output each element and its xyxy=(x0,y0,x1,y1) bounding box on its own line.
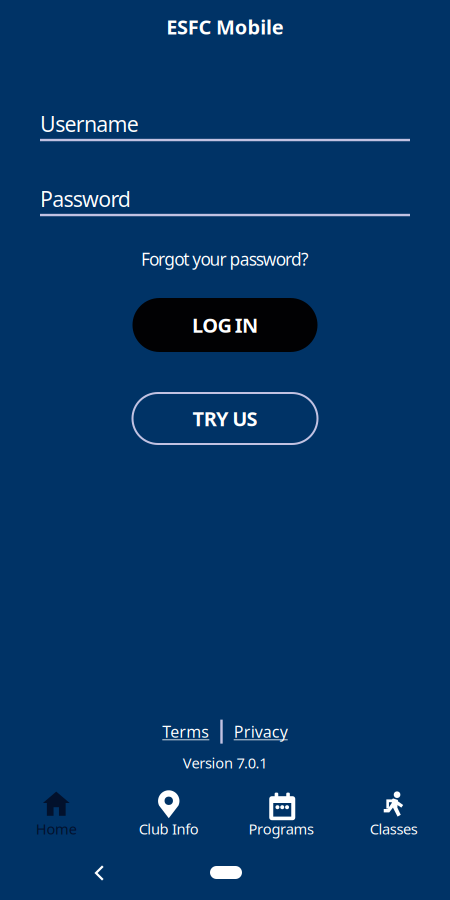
staticText: ESFC Mobile xyxy=(166,13,284,40)
staticText: Classes xyxy=(370,819,418,838)
button[interactable]: Home xyxy=(0,785,112,842)
staticText: Terms xyxy=(162,721,209,742)
button[interactable]: Classes xyxy=(337,785,450,842)
button[interactable]: Privacy xyxy=(228,718,294,745)
staticText: Version 7.0.1 xyxy=(183,753,267,772)
staticText: TRY US xyxy=(192,405,257,432)
button[interactable]: LOG IN xyxy=(132,298,317,352)
button[interactable]: Programs xyxy=(225,785,337,842)
button[interactable]: Home xyxy=(210,866,242,879)
staticText: Club Info xyxy=(139,819,199,838)
button[interactable]: Back xyxy=(94,865,105,881)
button[interactable]: TRY US xyxy=(132,393,317,444)
staticText: Forgot your password? xyxy=(141,247,309,270)
staticText: Password xyxy=(40,184,131,213)
button[interactable]: Club Info xyxy=(112,785,225,842)
button[interactable]: Terms xyxy=(156,718,215,745)
staticText: LOG IN xyxy=(192,312,258,338)
button[interactable]: Forgot your password? xyxy=(100,246,350,272)
staticText: Programs xyxy=(248,819,314,838)
staticText: Privacy xyxy=(234,721,288,742)
staticText: Username xyxy=(40,109,139,138)
staticText: Home xyxy=(36,819,77,838)
